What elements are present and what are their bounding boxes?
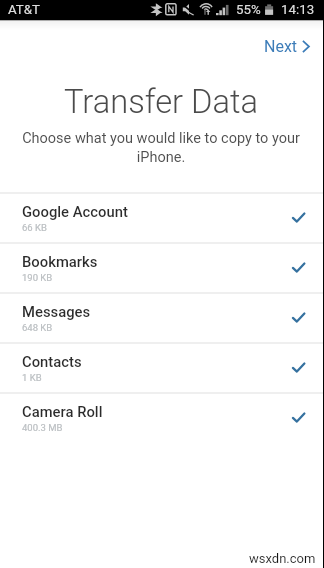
staticText: 1 KB <box>22 372 42 383</box>
other: Selected <box>291 212 306 223</box>
other: Selected <box>291 412 306 423</box>
staticText: 14:13 <box>281 2 315 18</box>
staticText: 190 KB <box>22 272 53 283</box>
staticText: AT&T <box>8 2 40 18</box>
staticText: Camera Roll <box>22 403 103 420</box>
button[interactable]: Next <box>258 33 316 60</box>
staticText: Messages <box>22 303 91 320</box>
staticText: Transfer Data <box>64 83 259 121</box>
staticText: wsxdn.com <box>249 551 316 566</box>
staticText: Contacts <box>22 353 82 370</box>
button[interactable]: Messages <box>0 292 324 342</box>
button[interactable]: Google Account <box>0 192 324 242</box>
button[interactable]: Camera Roll <box>0 392 324 442</box>
staticText: 66 KB <box>22 222 47 233</box>
staticText: Choose what you would like to copy to yo… <box>0 130 322 166</box>
staticText: 648 KB <box>22 322 53 333</box>
staticText: Google Account <box>22 203 128 220</box>
other: Selected <box>291 312 306 323</box>
staticText: Bookmarks <box>22 253 98 270</box>
other: Selected <box>291 262 306 273</box>
button[interactable]: Bookmarks <box>0 242 324 292</box>
staticText: 400.3 MB <box>22 422 63 433</box>
other: Selected <box>291 362 306 373</box>
staticText: Next <box>264 37 298 56</box>
staticText: 55% <box>236 2 261 18</box>
button[interactable]: Contacts <box>0 342 324 392</box>
